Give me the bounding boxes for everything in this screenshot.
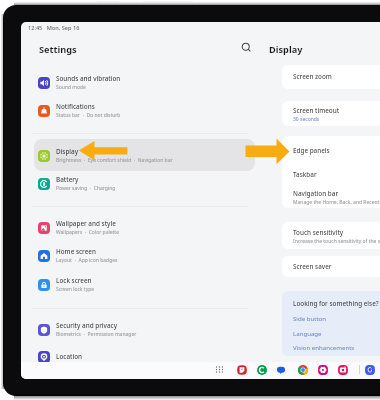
button[interactable]: App 0 (236, 364, 248, 376)
button[interactable]: Side button (289, 312, 380, 323)
button[interactable]: Edge panels (282, 136, 380, 208)
staticText: 30 seconds (293, 116, 320, 123)
button[interactable]: Touch sensitivity (282, 222, 380, 249)
staticText: Status bar · Do not disturb (56, 112, 121, 119)
staticText: Sounds and vibration (56, 74, 121, 83)
button[interactable]: Security and privacy (32, 316, 255, 343)
button[interactable]: App 4 (317, 364, 329, 376)
staticText: Settings (39, 43, 77, 56)
staticText: Home screen (56, 247, 96, 256)
button[interactable]: Vision enhancements (289, 341, 380, 352)
button[interactable]: Screen zoom (282, 65, 380, 89)
staticText: Wallpaper and style (56, 219, 116, 228)
staticText: Layout · App icon badges (56, 257, 118, 264)
button[interactable]: App 2 (275, 364, 287, 376)
button[interactable]: Apps (214, 364, 225, 375)
button[interactable]: Search (240, 41, 253, 54)
button[interactable]: Location (32, 343, 255, 370)
button[interactable]: App 6 (364, 364, 376, 376)
staticText: Sound mode (56, 84, 86, 91)
button[interactable]: App 1 (256, 364, 268, 376)
staticText: 12:45 Mon, Sep 16 (28, 24, 80, 32)
staticText: Edge panels (293, 146, 330, 155)
staticText: Battery (56, 175, 79, 184)
staticText: Display (269, 43, 303, 56)
staticText: Screen lock type (56, 286, 95, 293)
button[interactable]: Screen saver (282, 256, 380, 277)
staticText: Manage the Home, Back, and Recents butto… (293, 199, 380, 206)
staticText: Side button (293, 314, 327, 322)
staticText: Increase the touch sensitivity of the sc… (293, 238, 380, 245)
staticText: Screen zoom (293, 72, 332, 81)
staticText: Power saving · Charging (56, 185, 116, 192)
button[interactable]: App 5 (337, 364, 349, 376)
staticText: Taskbar (293, 170, 317, 179)
staticText: Looking for something else? (293, 299, 379, 308)
button[interactable]: Notifications (32, 97, 255, 124)
button[interactable]: Battery (32, 170, 255, 197)
button[interactable]: Sounds and vibration (32, 69, 255, 96)
staticText: Language (293, 329, 322, 337)
staticText: Wallpapers · Color palette (56, 229, 119, 236)
staticText: Brightness · Eye comfort shield · Naviga… (56, 157, 173, 164)
button[interactable]: Lock screen (32, 271, 255, 298)
staticText: Touch sensitivity (293, 228, 344, 237)
button[interactable]: Screen timeout (282, 101, 380, 126)
staticText: Location (56, 352, 83, 361)
button[interactable]: App 3 (297, 364, 309, 376)
button[interactable]: Wallpaper and style (32, 214, 255, 241)
staticText: Display (56, 147, 79, 156)
button[interactable]: Language (289, 327, 380, 338)
button[interactable]: Home screen (32, 242, 255, 269)
button[interactable]: Display (32, 142, 255, 169)
staticText: Biometrics · Permission manager (56, 331, 137, 338)
staticText: Notifications (56, 102, 95, 111)
staticText: Screen saver (293, 262, 332, 271)
staticText: Screen timeout (293, 106, 340, 115)
staticText: Security and privacy (56, 321, 118, 330)
staticText: Lock screen (56, 276, 92, 285)
staticText: Vision enhancements (293, 343, 355, 351)
staticText: Navigation bar (293, 189, 339, 198)
